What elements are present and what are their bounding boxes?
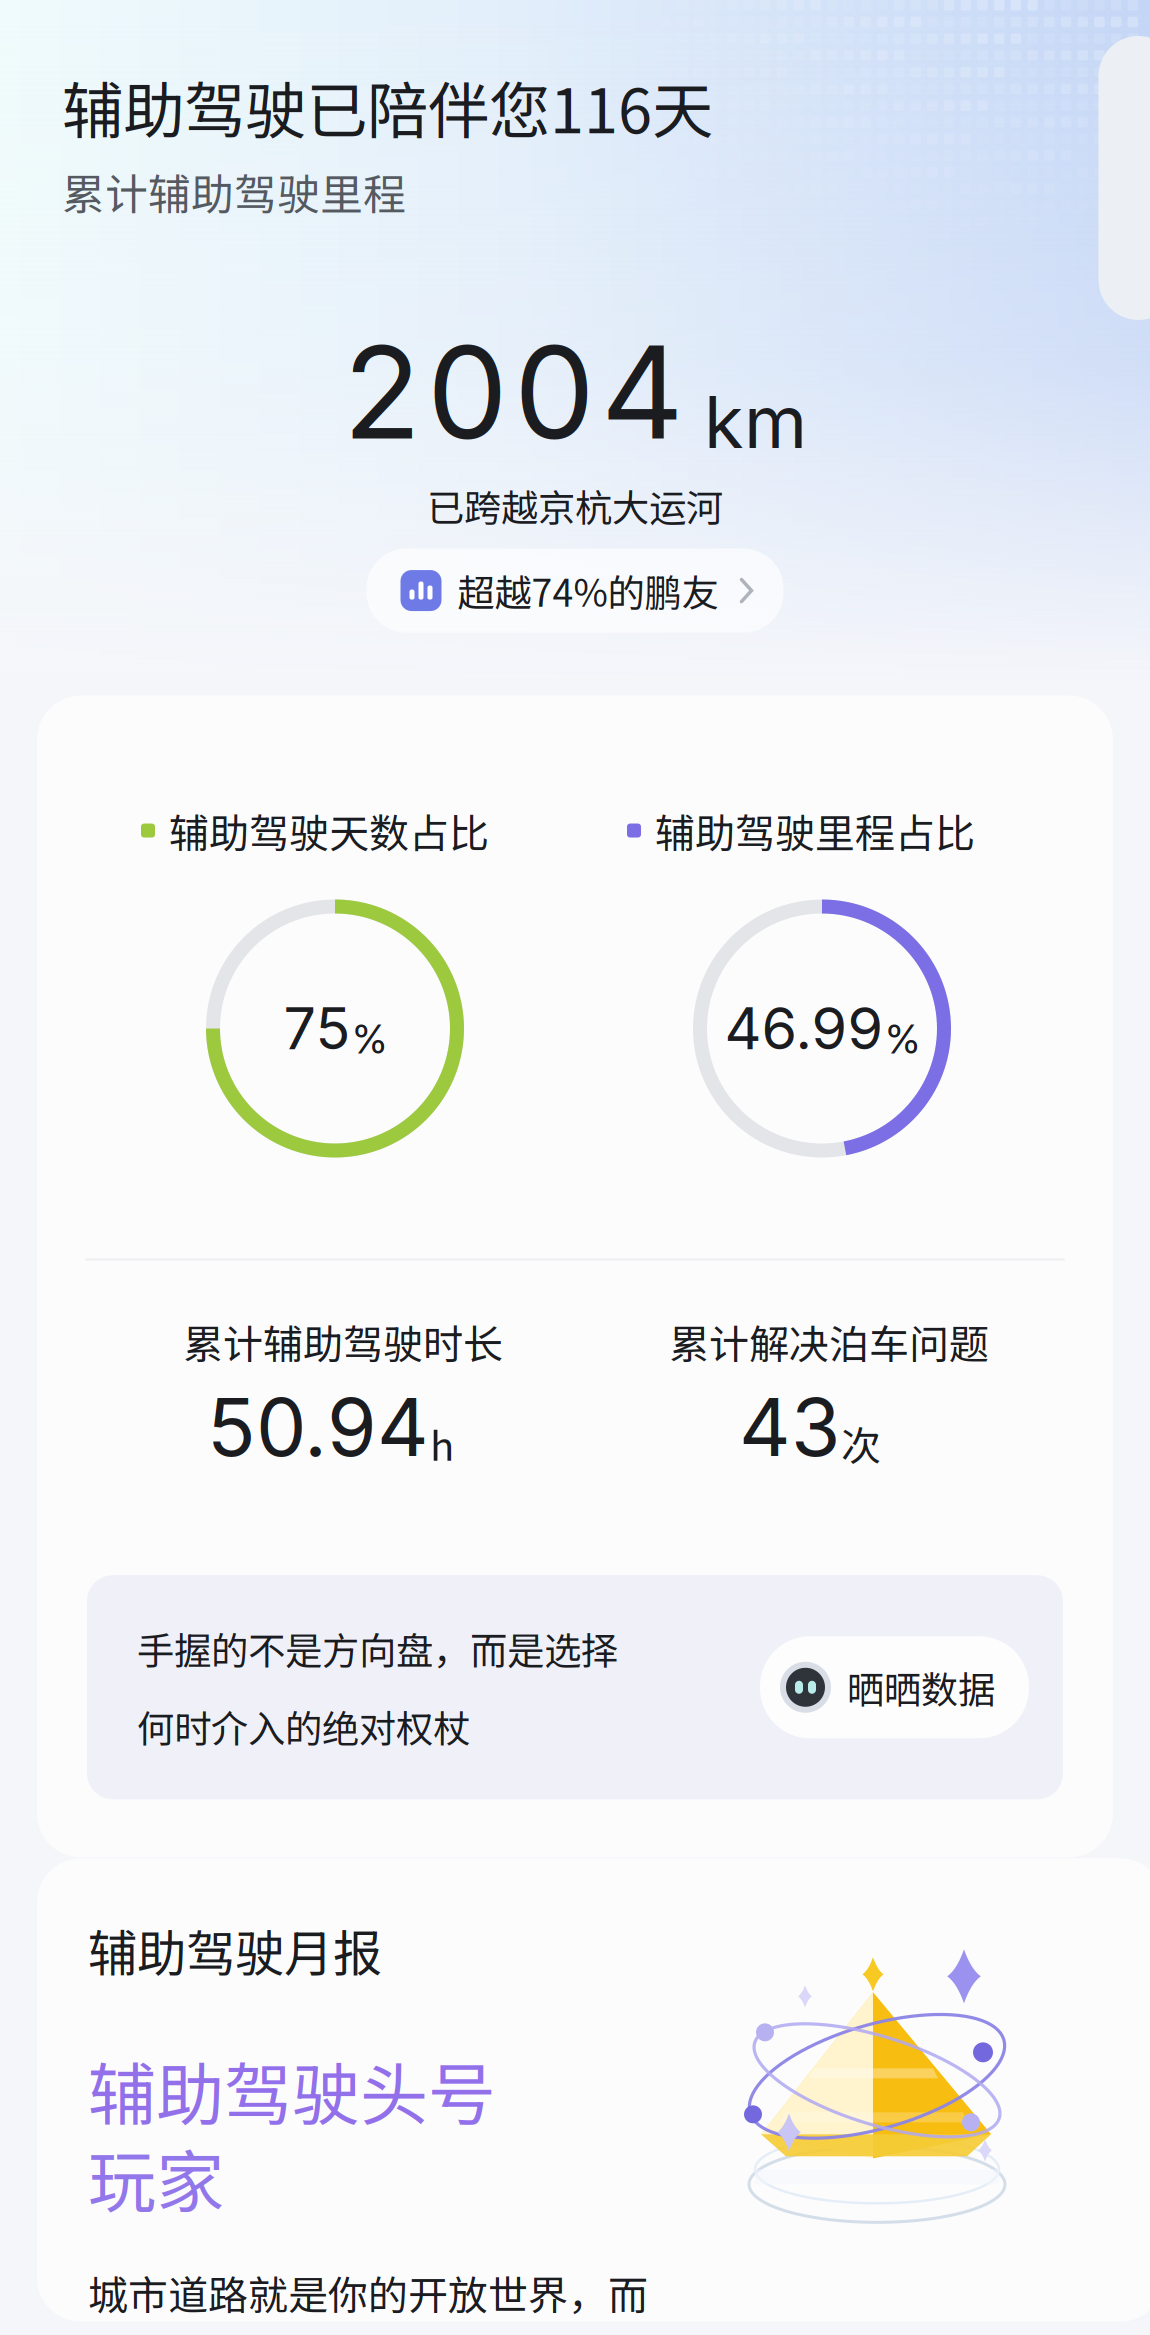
staticText: 辅助驾驶已陪伴您116天 (62, 62, 713, 151)
staticText: 累计辅助驾驶里程 (62, 161, 406, 223)
button[interactable]: 晒晒数据 (760, 1636, 1029, 1738)
staticText: % (885, 1015, 919, 1063)
staticText: 50.94 (207, 1378, 429, 1475)
button[interactable]: 超越74%的鹏友 (366, 548, 783, 633)
staticText: 辅助驾驶头号 (88, 2041, 496, 2139)
staticText: 城市道路就是你的开放世界，而 (88, 2264, 648, 2322)
staticText: km (704, 378, 807, 465)
staticText: h (430, 1414, 454, 1472)
staticText: 辅助驾驶里程占比 (655, 802, 975, 859)
staticText: 辅助驾驶天数占比 (169, 802, 489, 859)
staticText: 43 (739, 1378, 840, 1475)
staticText: % (352, 1015, 386, 1063)
staticText: 辅助驾驶月报 (88, 1914, 382, 1986)
staticText: 2004 (343, 315, 684, 469)
staticText: 已跨越京杭大运河 (427, 478, 723, 533)
staticText: 玩家 (88, 2128, 224, 2227)
staticText: 何时介入的绝对权杖 (137, 1699, 470, 1753)
staticText: 累计解决泊车问题 (669, 1312, 989, 1370)
staticText: 超越74%的鹏友 (457, 563, 718, 618)
staticText: 75 (283, 994, 350, 1063)
staticText: 累计辅助驾驶时长 (183, 1312, 503, 1370)
staticText: 次 (841, 1414, 881, 1472)
staticText: 晒晒数据 (847, 1660, 995, 1714)
staticText: 手握的不是方向盘，而是选择 (137, 1621, 618, 1675)
staticText: 46.99 (724, 994, 883, 1063)
